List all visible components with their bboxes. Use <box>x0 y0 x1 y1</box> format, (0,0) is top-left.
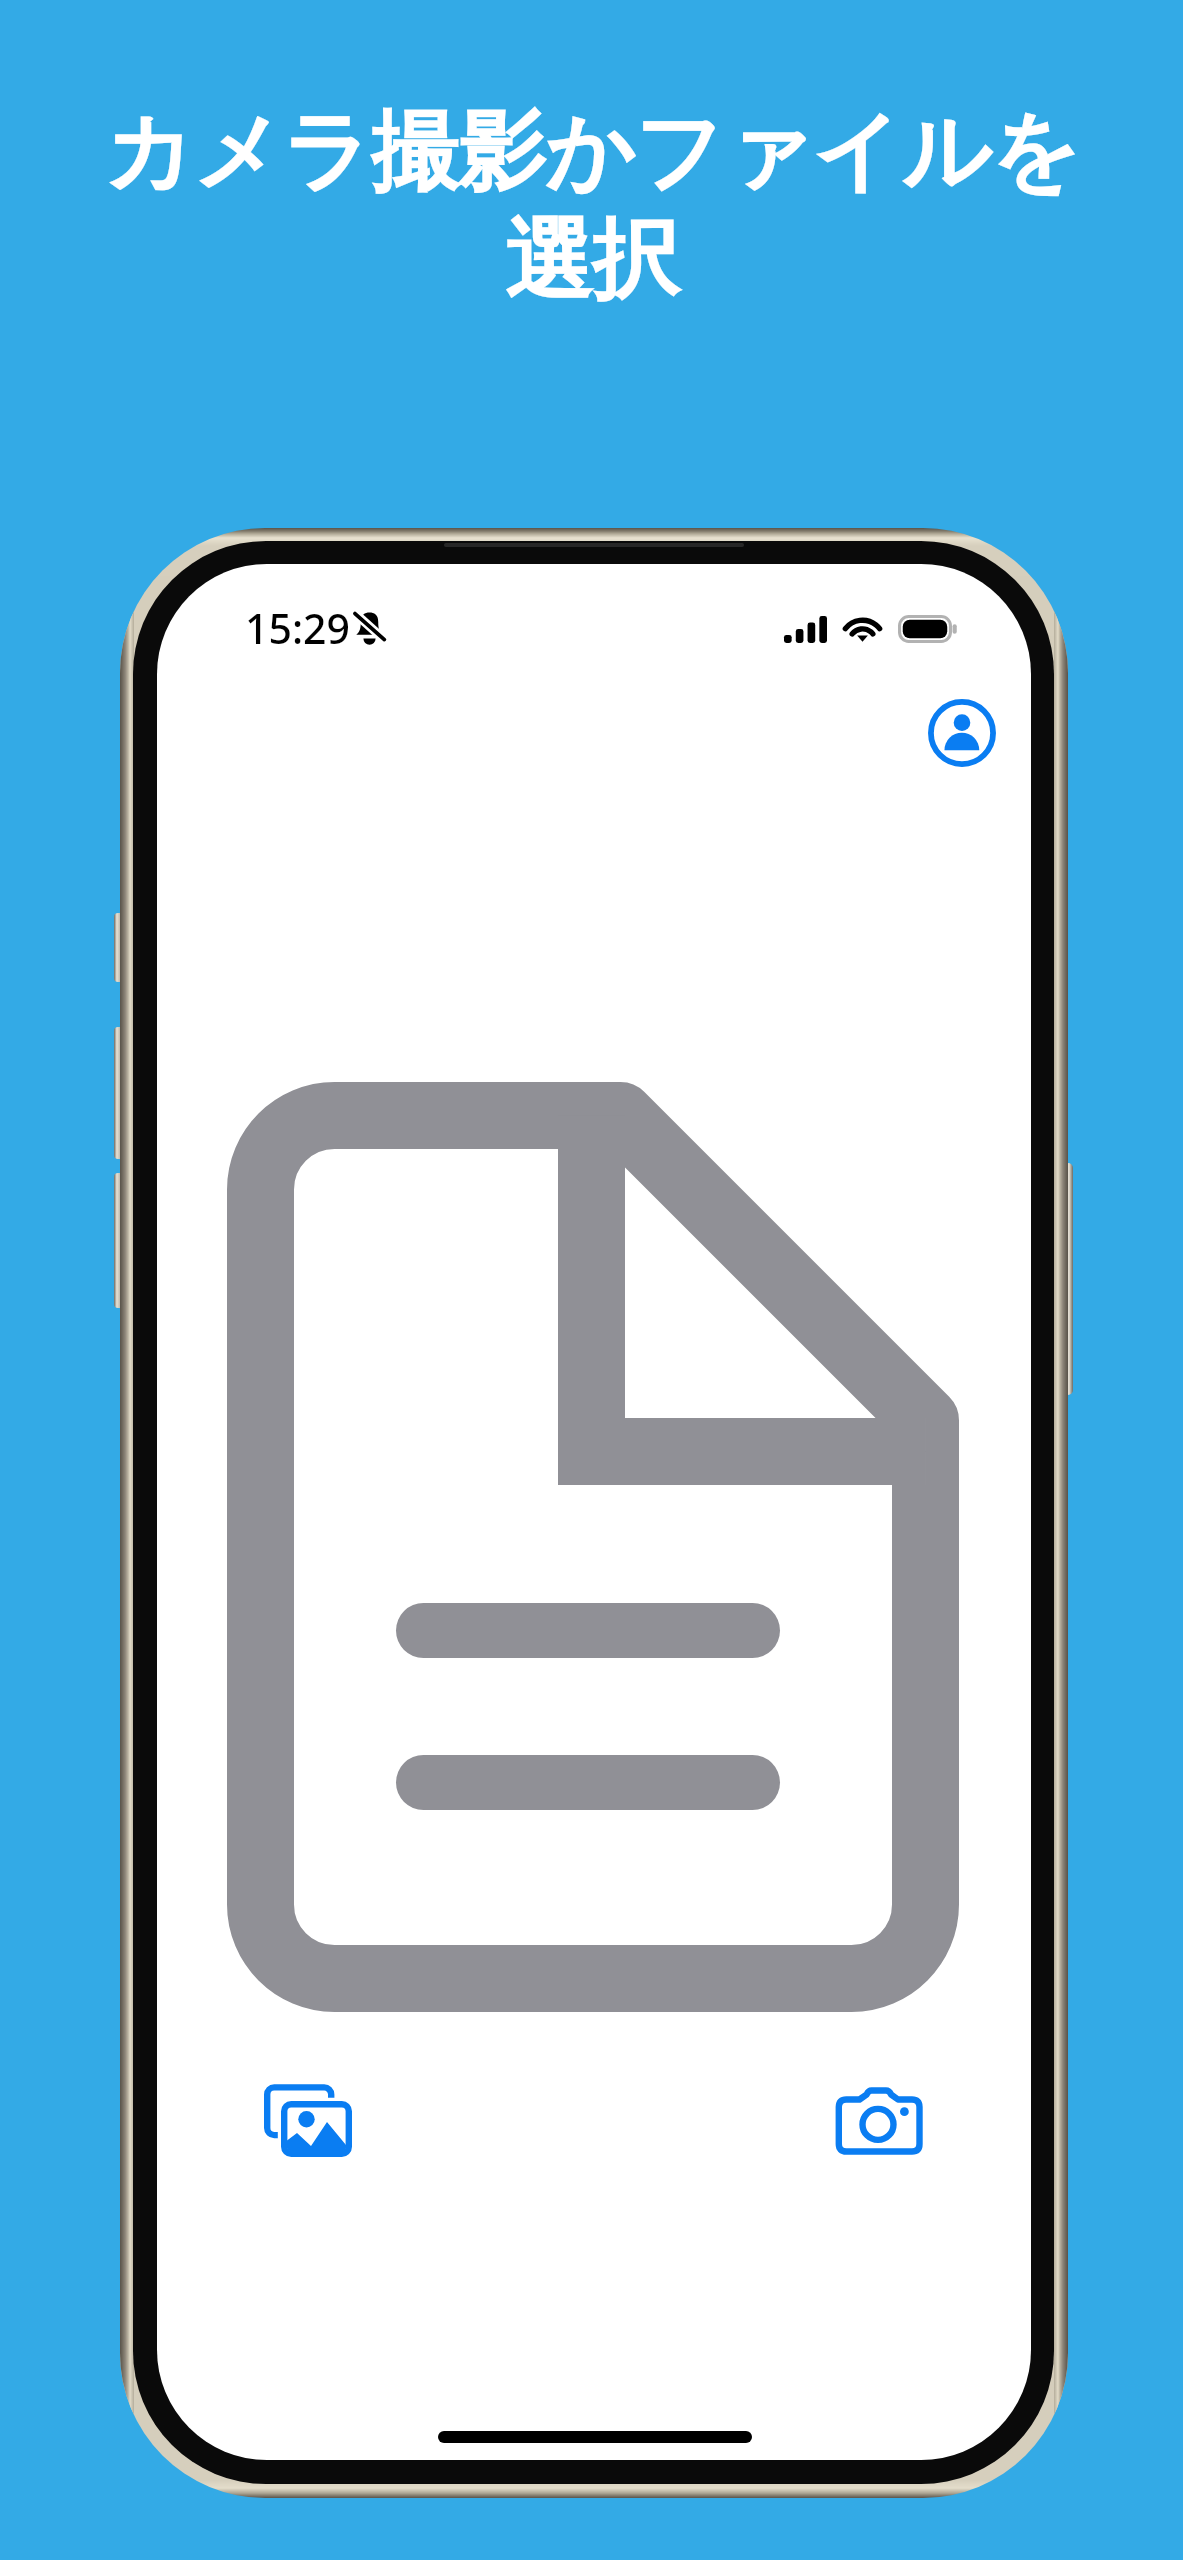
button[interactable]: Take a photo <box>810 2059 948 2182</box>
button[interactable]: Account <box>904 675 1020 791</box>
staticText: 15:29 <box>245 600 350 656</box>
staticText: カメラ撮影かファイルを 選択 <box>0 97 1183 316</box>
button[interactable]: Choose photo from library <box>239 2059 377 2182</box>
